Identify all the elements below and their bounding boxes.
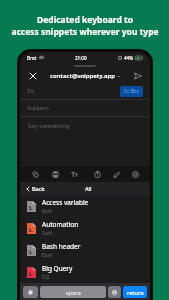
button[interactable]: Cc Bcc	[120, 86, 143, 97]
staticText: To:	[27, 87, 36, 95]
button[interactable]: space	[40, 286, 106, 298]
button[interactable]: Send	[132, 70, 143, 81]
button[interactable]: Big Query	[20, 261, 150, 283]
button[interactable]: Draw	[110, 168, 122, 180]
staticText: Bash	[42, 208, 53, 214]
staticText: Automation	[42, 220, 79, 229]
button[interactable]: Close	[27, 70, 38, 81]
button[interactable]: All	[82, 184, 95, 193]
staticText: Brot	[27, 55, 37, 61]
staticText: Back	[32, 185, 45, 192]
button[interactable]: Switch keyboard	[108, 286, 121, 298]
staticText: 44%	[124, 55, 133, 61]
button[interactable]: Bash header	[20, 239, 150, 261]
staticText: Bash header	[42, 242, 81, 251]
button[interactable]: Camera	[129, 168, 141, 180]
staticText: Access variable	[42, 198, 89, 207]
staticText: contact@snippety.app	[50, 72, 115, 80]
button[interactable]: return	[123, 286, 147, 298]
button[interactable]: Text format	[68, 168, 80, 180]
button[interactable]: Save	[49, 168, 61, 180]
staticText: 21:00	[75, 55, 87, 61]
staticText: return	[127, 289, 144, 296]
staticText: Cc Bcc	[124, 88, 139, 95]
button[interactable]: Automation	[20, 217, 150, 239]
staticText: Big Query	[42, 264, 73, 273]
button[interactable]: Access variable	[20, 195, 150, 217]
staticText: Swift	[42, 230, 53, 236]
staticText: All	[85, 185, 92, 192]
staticText: SQL	[42, 274, 51, 280]
staticText: Say something	[28, 122, 70, 130]
button[interactable]: Back	[25, 184, 46, 193]
staticText: Dedicated keyboard to access snippets wh…	[11, 14, 159, 38]
staticText: Subject:	[27, 104, 50, 112]
button[interactable]: Attach	[29, 168, 41, 180]
staticText: Bash	[42, 252, 53, 258]
button[interactable]: Emoji	[23, 286, 38, 298]
button[interactable]: Timer	[91, 168, 103, 180]
staticText: space	[66, 289, 81, 296]
